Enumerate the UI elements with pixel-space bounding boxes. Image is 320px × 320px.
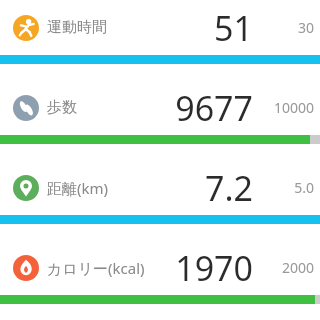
staticText: カロリー(kcal)	[47, 258, 145, 278]
staticText: 距離(km)	[47, 178, 109, 198]
button[interactable]: Steps	[0, 80, 320, 160]
staticText: 51	[214, 5, 253, 51]
other: Steps	[13, 95, 39, 121]
staticText: 10000	[273, 98, 314, 117]
staticText: 1970	[175, 245, 253, 291]
other: Distance	[13, 175, 39, 201]
staticText: 30	[297, 18, 314, 37]
button[interactable]: Calories	[0, 240, 320, 320]
staticText: 7.2	[204, 165, 253, 211]
button[interactable]: Exercise time	[0, 0, 320, 80]
staticText: 5.0	[294, 178, 314, 197]
staticText: 歩数	[47, 98, 77, 117]
staticText: 2000	[281, 258, 314, 277]
other: Calories	[13, 255, 39, 281]
staticText: 9677	[175, 85, 253, 131]
other: Exercise time	[13, 15, 39, 41]
staticText: 運動時間	[47, 18, 107, 37]
button[interactable]: Distance	[0, 160, 320, 240]
